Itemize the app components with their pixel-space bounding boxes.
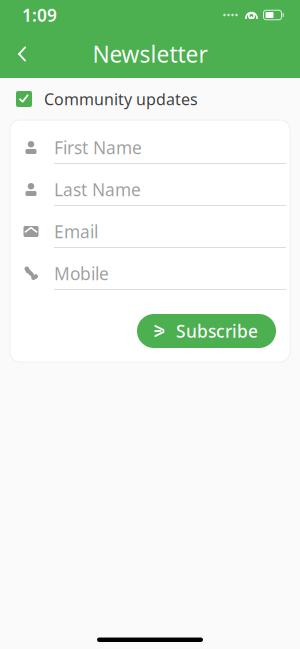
staticText: Email <box>54 220 98 243</box>
button[interactable]: Subscribe <box>137 314 276 348</box>
staticText: Community updates <box>44 88 198 110</box>
staticText: 1:09 <box>22 3 57 26</box>
button[interactable]: Back <box>0 32 44 76</box>
staticText: Newsletter <box>92 39 207 69</box>
staticText: Last Name <box>54 178 141 201</box>
staticText: Subscribe <box>176 319 258 342</box>
staticText: First Name <box>54 136 142 159</box>
staticText: Mobile <box>54 262 109 285</box>
button[interactable]: Community updates <box>0 78 300 120</box>
